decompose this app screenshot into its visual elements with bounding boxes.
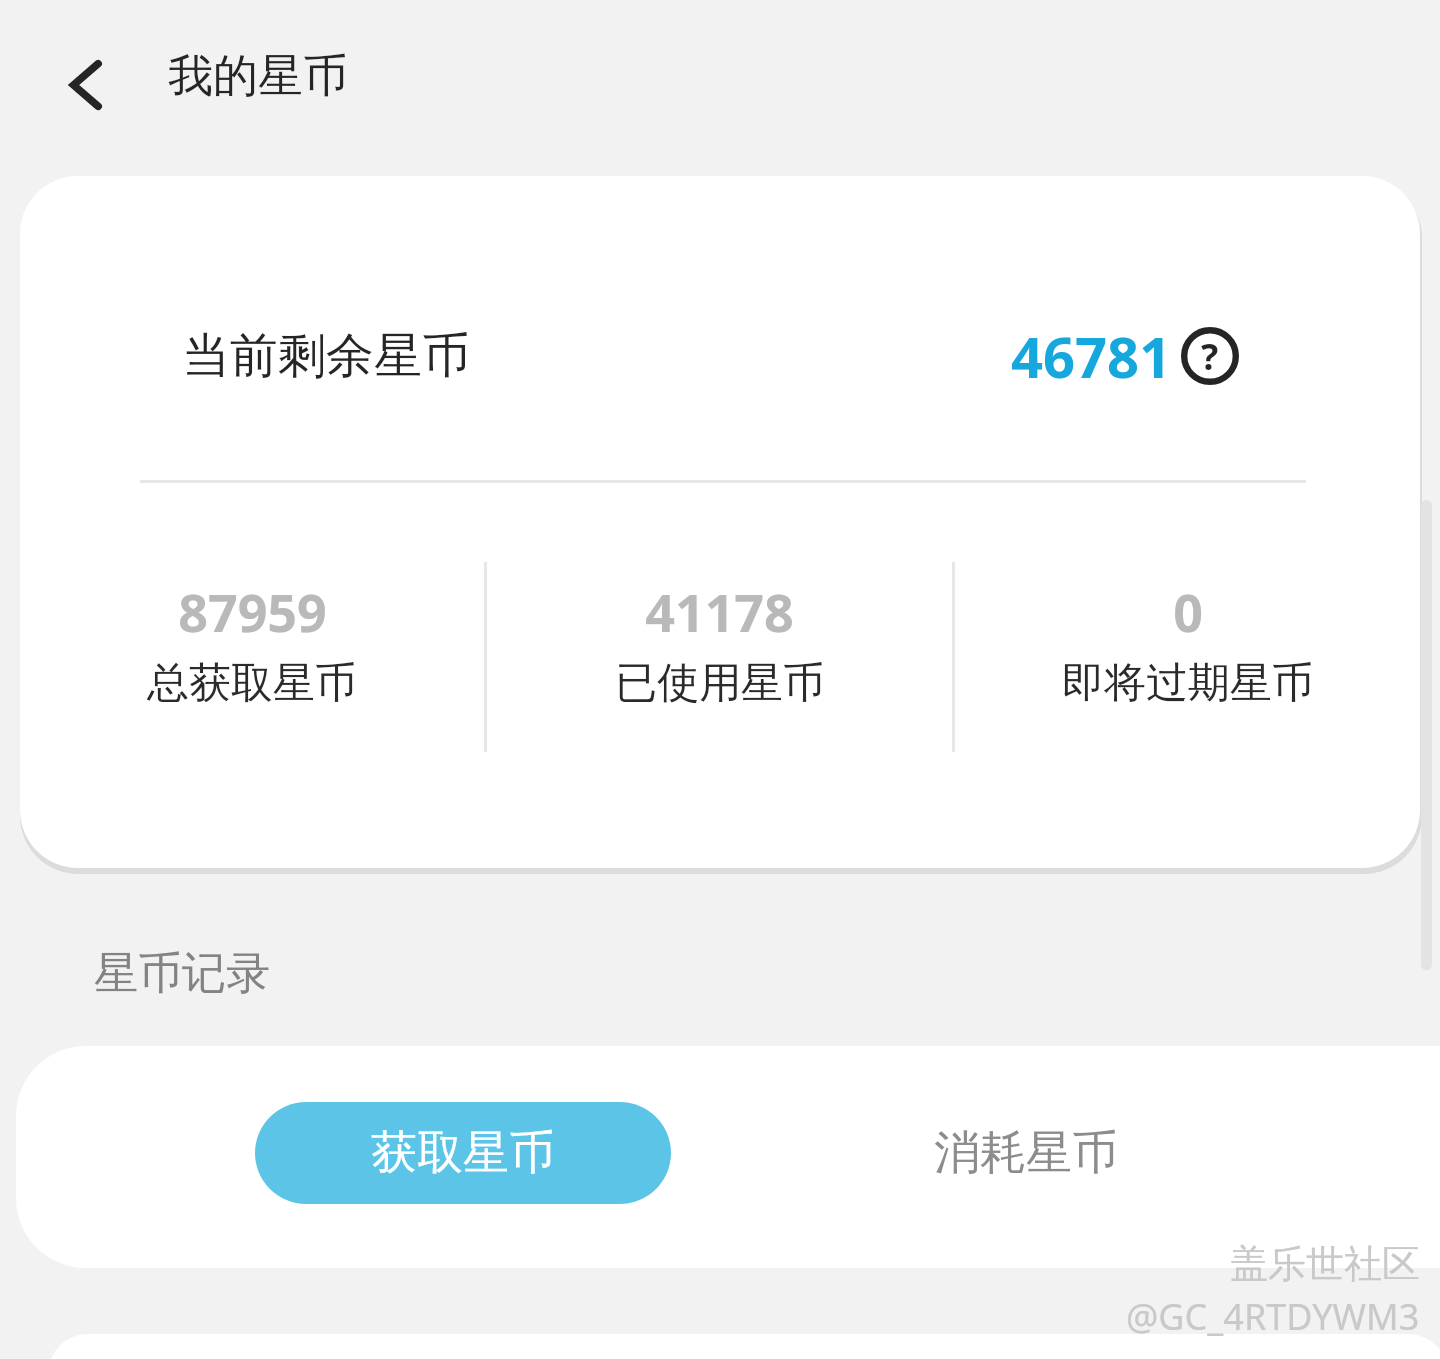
button[interactable]: 消耗星币: [841, 1102, 1211, 1204]
staticText: 星币记录: [94, 946, 270, 1001]
staticText: ?: [1201, 332, 1219, 381]
staticText: 即将过期星币: [1062, 657, 1314, 710]
staticText: 46781: [1011, 318, 1172, 394]
staticText: 已使用星币: [615, 657, 825, 710]
staticText: 消耗星币: [934, 1124, 1118, 1182]
button[interactable]: 87959: [20, 576, 484, 710]
staticText: @GC_4RTDYWM3: [1126, 1292, 1420, 1341]
staticText: 0: [1173, 576, 1203, 647]
staticText: 我的星币: [168, 48, 348, 105]
staticText: 87959: [178, 576, 327, 647]
staticText: 当前剩余星币: [182, 326, 470, 386]
button[interactable]: 0: [955, 576, 1420, 710]
button[interactable]: 41178: [487, 576, 952, 710]
button[interactable]: Help: [1178, 324, 1242, 388]
staticText: 盖乐世社区: [1230, 1240, 1420, 1288]
staticText: 41178: [645, 576, 794, 647]
button[interactable]: Back: [30, 28, 144, 142]
staticText: 总获取星币: [147, 657, 357, 710]
button[interactable]: 获取星币: [255, 1102, 671, 1204]
staticText: 获取星币: [371, 1124, 555, 1182]
